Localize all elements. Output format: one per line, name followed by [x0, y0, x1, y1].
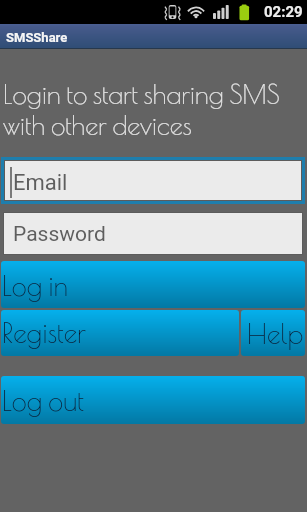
staticText: Help: [247, 318, 304, 350]
staticText: Log out: [2, 385, 84, 417]
button[interactable]: Password: [4, 213, 302, 254]
button[interactable]: Help: [241, 310, 305, 356]
button[interactable]: Log out: [1, 376, 305, 424]
other: Signal strength: [213, 5, 230, 19]
other: Battery: [239, 4, 251, 21]
staticText: 02:29: [264, 3, 303, 21]
button[interactable]: Email: [5, 161, 301, 200]
other: Wi-Fi: [187, 5, 205, 18]
other: Vibrate mode: [163, 5, 182, 19]
staticText: Register: [2, 317, 86, 349]
staticText: Log in: [2, 270, 68, 302]
button[interactable]: Log in: [1, 261, 305, 308]
button[interactable]: Register: [1, 310, 239, 356]
staticText: Password: [13, 222, 106, 247]
staticText: Login to start sharing SMS with other de…: [3, 79, 295, 141]
staticText: SMSShare: [6, 30, 68, 45]
staticText: Email: [13, 170, 68, 196]
